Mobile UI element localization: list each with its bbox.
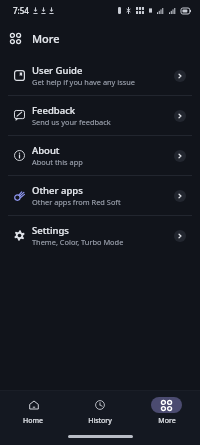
staticText: Other apps — [32, 184, 83, 197]
staticText: Home — [23, 416, 43, 426]
button[interactable]: History — [66, 395, 133, 426]
staticText: Get help if you have any issue — [32, 77, 136, 87]
button[interactable]: About — [0, 136, 200, 175]
staticText: More — [32, 31, 60, 46]
staticText: Send us your feedback — [32, 117, 111, 127]
staticText: Theme, Color, Turbo Mode — [32, 237, 124, 247]
button[interactable]: Home — [0, 395, 66, 426]
button[interactable]: More — [133, 395, 200, 426]
button[interactable]: Settings — [0, 216, 200, 255]
staticText: History — [88, 416, 112, 426]
staticText: Feedback — [32, 104, 76, 117]
staticText: About — [32, 144, 60, 157]
staticText: More — [158, 416, 176, 426]
staticText: User Guide — [32, 64, 83, 77]
button[interactable]: Feedback — [0, 96, 200, 135]
button[interactable]: Other apps — [0, 176, 200, 215]
staticText: Other apps from Red Soft — [32, 197, 121, 207]
staticText: Settings — [32, 224, 69, 237]
other: More — [161, 400, 172, 411]
staticText: 7:54 — [13, 5, 29, 16]
button[interactable]: User Guide — [0, 56, 200, 95]
staticText: About this app — [32, 157, 83, 167]
